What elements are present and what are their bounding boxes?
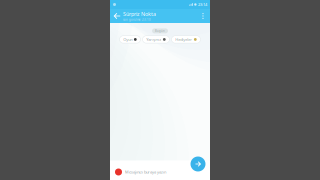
staticText: son görülme 23:10 [123,18,151,21]
staticText: Oyun [123,37,132,42]
button[interactable]: Emoji [115,168,122,175]
button[interactable]: Hediyeler [171,36,200,43]
button[interactable]: More options [199,9,207,23]
button[interactable]: Yarışma [142,36,169,43]
button[interactable]: Send [190,156,205,171]
staticText: Yarışma [146,37,161,42]
staticText: 23:14 [198,2,207,7]
staticText: Mesajınızı buraya yazın [125,169,166,175]
staticText: Hediyeler [175,37,192,42]
button[interactable]: Oyun [119,36,140,43]
staticText: Bugün [155,29,165,33]
staticText: Sürpriz Nokta [123,10,156,18]
button[interactable]: Back [112,9,123,23]
